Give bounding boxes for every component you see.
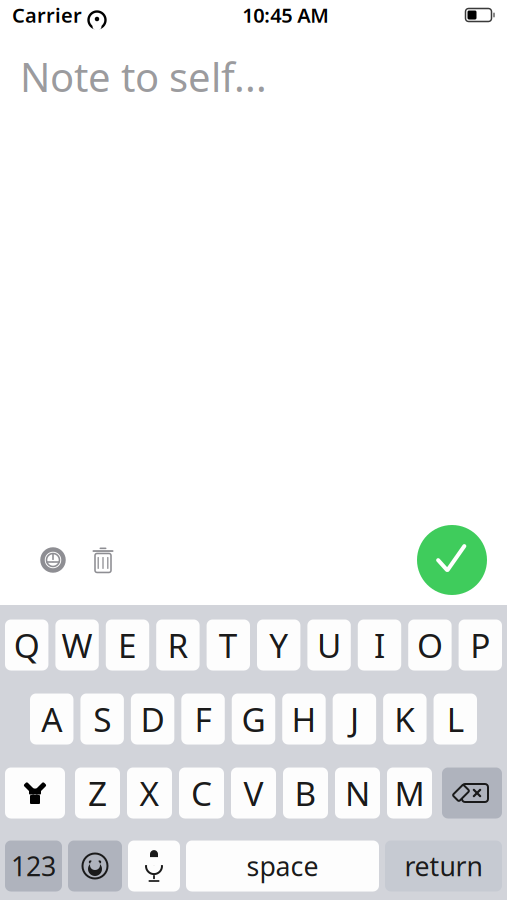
staticText: N	[345, 771, 370, 815]
button[interactable]: Q	[5, 619, 48, 670]
button[interactable]: 123	[5, 840, 62, 891]
button[interactable]: Shift	[5, 767, 65, 818]
staticText: S	[93, 697, 111, 741]
staticText: 10:45 AM	[242, 2, 329, 28]
button[interactable]: B	[283, 767, 328, 818]
button[interactable]: U	[307, 619, 351, 670]
staticText: space	[246, 848, 318, 884]
staticText: E	[118, 623, 137, 667]
button[interactable]: return	[385, 840, 502, 891]
button[interactable]: P	[459, 619, 502, 670]
staticText: A	[41, 697, 62, 741]
button[interactable]: space	[186, 840, 379, 891]
button[interactable]: C	[179, 767, 224, 818]
button[interactable]: R	[156, 619, 200, 670]
button[interactable]: Y	[257, 619, 300, 670]
button[interactable]: O	[408, 619, 452, 670]
staticText: B	[294, 771, 316, 815]
staticText: J	[350, 697, 359, 741]
button[interactable]: D	[131, 693, 174, 744]
staticText: M	[394, 771, 424, 815]
staticText: C	[191, 771, 212, 815]
button[interactable]: Delete	[78, 535, 128, 585]
button[interactable]: V	[231, 767, 276, 818]
button[interactable]: Z	[75, 767, 120, 818]
staticText: L	[447, 697, 464, 741]
staticText: W	[62, 623, 93, 667]
button[interactable]: H	[282, 693, 326, 744]
staticText: H	[291, 697, 316, 741]
staticText: Z	[88, 771, 107, 815]
staticText: D	[141, 697, 165, 741]
button[interactable]: W	[55, 619, 99, 670]
button[interactable]: K	[383, 693, 426, 744]
staticText: U	[317, 623, 341, 667]
staticText: return	[404, 848, 482, 884]
button[interactable]: Settings	[28, 535, 78, 585]
button[interactable]: F	[181, 693, 225, 744]
staticText: K	[394, 697, 415, 741]
button[interactable]: E	[106, 619, 149, 670]
button[interactable]: J	[333, 693, 376, 744]
button[interactable]: S	[80, 693, 124, 744]
staticText: X	[139, 771, 159, 815]
button[interactable]: Delete	[442, 767, 502, 818]
staticText: Note to self...	[20, 50, 267, 103]
button[interactable]: M	[387, 767, 432, 818]
staticText: Carrier	[12, 2, 82, 28]
staticText: O	[417, 623, 443, 667]
staticText: F	[195, 697, 212, 741]
staticText: P	[470, 623, 490, 667]
staticText: I	[374, 623, 385, 667]
button[interactable]: N	[335, 767, 380, 818]
button[interactable]: Emoji	[68, 840, 122, 891]
button[interactable]: X	[127, 767, 172, 818]
button[interactable]: A	[30, 693, 73, 744]
staticText: G	[241, 697, 265, 741]
staticText: 123	[11, 848, 56, 884]
staticText: Q	[14, 623, 40, 667]
button[interactable]: L	[434, 693, 477, 744]
staticText: T	[219, 623, 238, 667]
staticText: V	[243, 771, 263, 815]
button[interactable]: G	[232, 693, 275, 744]
button[interactable]: Save note	[417, 525, 487, 595]
staticText: R	[167, 623, 188, 667]
staticText: Y	[269, 623, 288, 667]
button[interactable]: Dictation	[128, 840, 180, 891]
button[interactable]: T	[207, 619, 250, 670]
button[interactable]: I	[358, 619, 401, 670]
